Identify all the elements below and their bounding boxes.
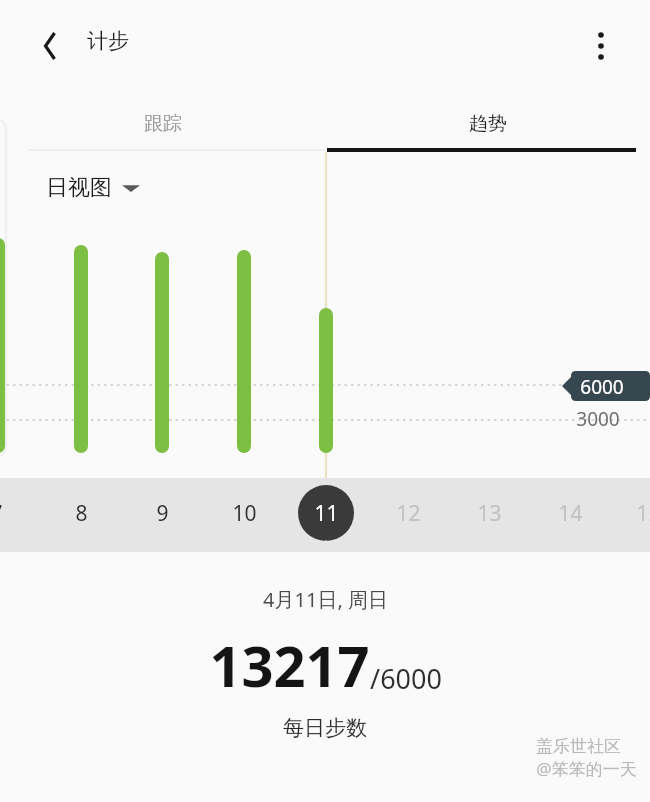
staticText: 9 [156, 499, 169, 528]
staticText: 计步 [87, 28, 129, 54]
staticText: 12 [396, 499, 421, 528]
staticText: @笨笨的一天 [536, 757, 637, 780]
button[interactable]: 10 [214, 483, 274, 543]
button[interactable]: 14 [540, 483, 600, 543]
staticText: 8 [75, 499, 88, 528]
button[interactable]: 12 [378, 483, 438, 543]
staticText: 趋势 [469, 112, 507, 136]
staticText: 每日步数 [283, 715, 367, 741]
button[interactable]: 趋势 [325, 98, 650, 150]
button[interactable]: 9 [132, 483, 192, 543]
staticText: 13 [477, 499, 502, 528]
staticText: 盖乐世社区 [536, 736, 621, 757]
staticText: 11 [314, 499, 339, 528]
staticText: 3000 [576, 406, 620, 432]
button[interactable]: 13 [459, 483, 519, 543]
staticText: 跟踪 [144, 112, 182, 136]
button[interactable]: More options [578, 23, 624, 69]
button[interactable]: 日视图 [46, 174, 140, 202]
staticText: 13217 [209, 627, 370, 703]
staticText: 4月11日, 周日 [263, 586, 388, 613]
staticText: /6000 [370, 660, 442, 697]
staticText: 7 [0, 499, 3, 528]
staticText: 6000 [580, 374, 624, 400]
staticText: 10 [232, 499, 257, 528]
button[interactable]: 跟踪 [0, 98, 325, 150]
button[interactable]: 11 [296, 483, 356, 543]
button[interactable]: 15 [618, 483, 650, 543]
staticText: 15 [636, 499, 650, 528]
staticText: 日视图 [46, 174, 112, 202]
button[interactable]: 8 [51, 483, 111, 543]
staticText: 14 [558, 499, 583, 528]
button[interactable]: Back [26, 23, 72, 69]
button[interactable]: 7 [0, 483, 26, 543]
